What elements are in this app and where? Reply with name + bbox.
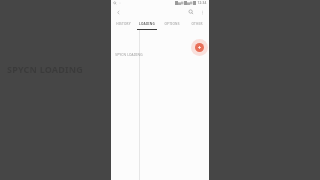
staticText: SPYCN LOADING xyxy=(7,63,83,75)
button[interactable]: Search xyxy=(186,7,196,17)
button[interactable]: OTHER xyxy=(184,18,209,29)
staticText: HISTORY xyxy=(116,22,131,26)
staticText: LOADING xyxy=(139,22,155,26)
button[interactable]: More options xyxy=(197,7,207,17)
button[interactable]: Add xyxy=(190,38,208,56)
staticText: 12:34 xyxy=(197,1,207,5)
button[interactable]: LOADING xyxy=(135,18,159,29)
button[interactable]: OPTIONS xyxy=(159,18,184,29)
button[interactable]: SPYCN LOADING xyxy=(114,52,144,58)
button[interactable]: HISTORY xyxy=(111,18,135,29)
staticText: OPTIONS xyxy=(164,22,180,26)
staticText: OTHER xyxy=(191,22,203,26)
button[interactable]: Back xyxy=(113,7,123,17)
